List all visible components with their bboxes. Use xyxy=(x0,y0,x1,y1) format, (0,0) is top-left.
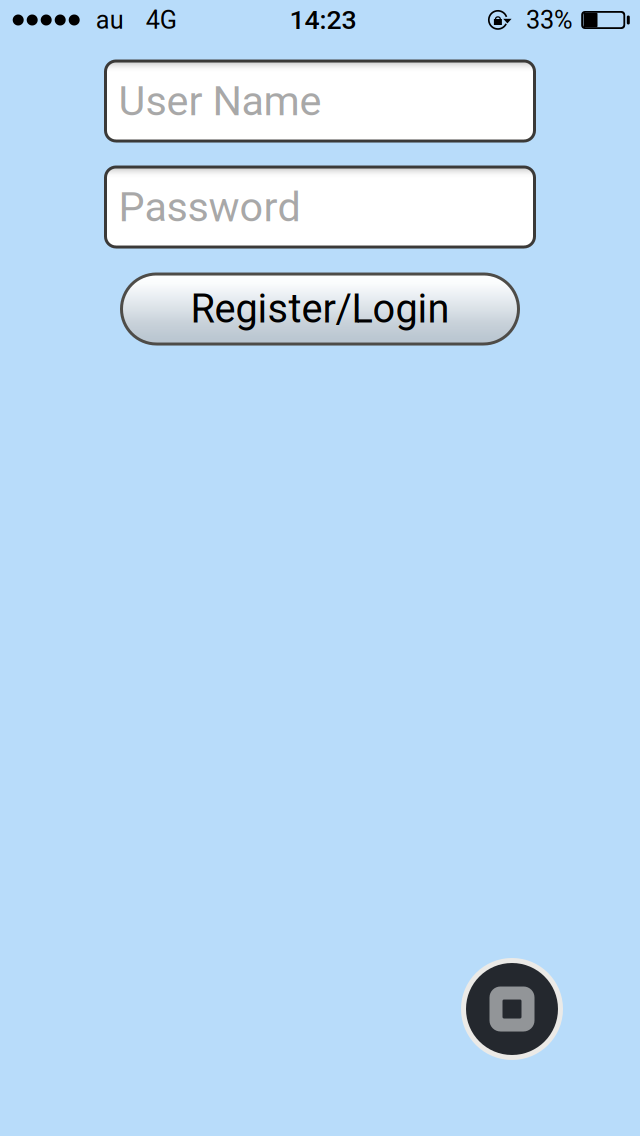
staticText: 14:23 xyxy=(289,4,356,36)
staticText: Register/Login xyxy=(190,286,449,332)
staticText: au xyxy=(96,5,124,35)
button[interactable]: Register/Login xyxy=(121,274,518,344)
button[interactable]: User Name xyxy=(105,61,534,141)
staticText: Password xyxy=(118,183,300,231)
staticText: 4G xyxy=(146,5,177,35)
staticText: 33% xyxy=(526,5,573,35)
button[interactable]: Password xyxy=(105,167,534,247)
staticText: User Name xyxy=(118,77,321,125)
button[interactable]: AssistiveTouch xyxy=(461,958,563,1060)
